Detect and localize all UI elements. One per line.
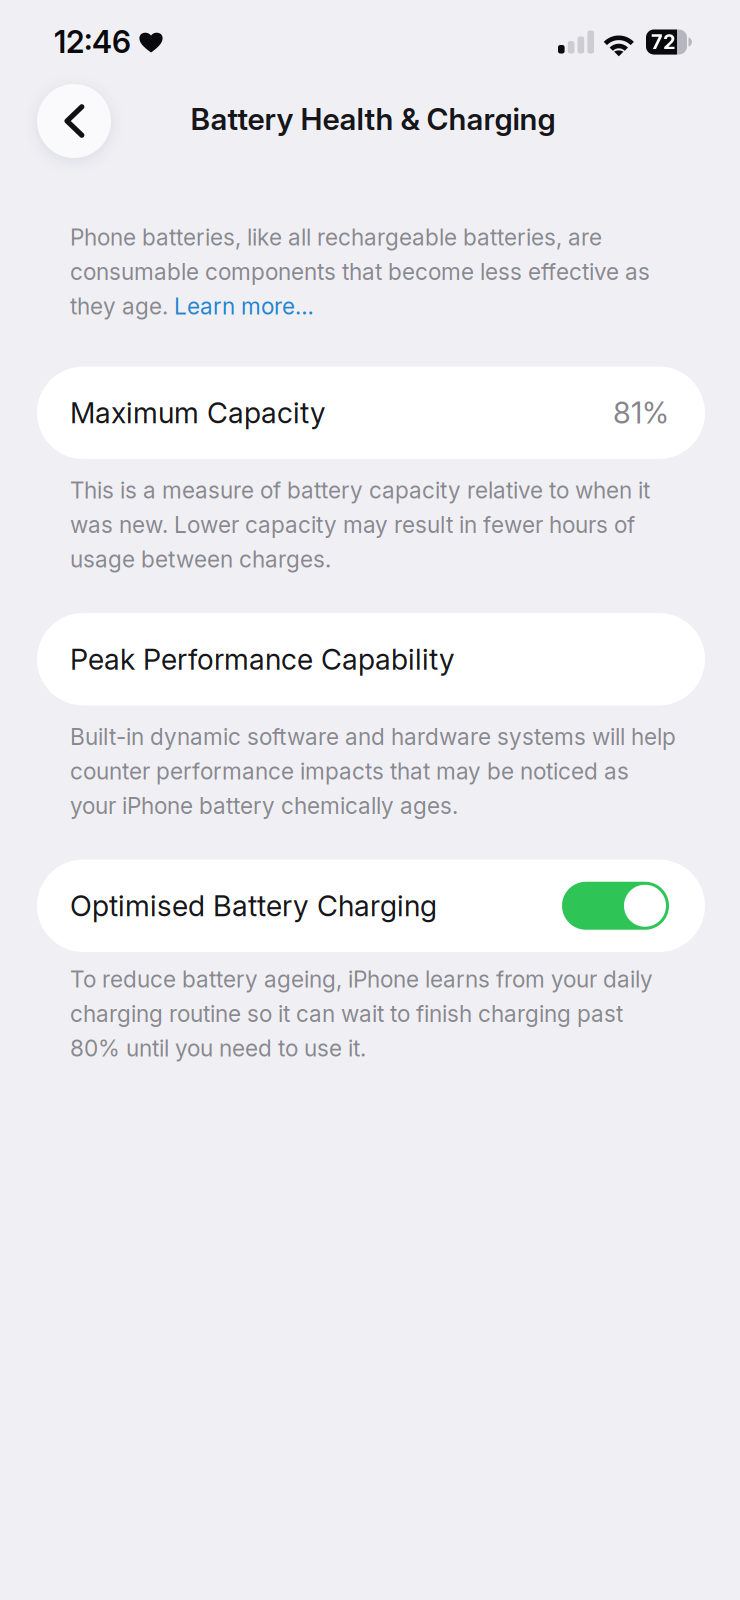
staticText: Learn more… bbox=[174, 292, 314, 320]
staticText: 72 bbox=[651, 30, 676, 54]
button[interactable]: Learn more… bbox=[174, 292, 314, 320]
staticText: Optimised Battery Charging bbox=[70, 888, 437, 923]
staticText: consumable components that become less e… bbox=[70, 258, 650, 285]
staticText: 80% until you need to use it. bbox=[70, 1034, 366, 1062]
button[interactable]: Peak Performance Capability bbox=[37, 613, 705, 705]
staticText: they age. bbox=[70, 292, 174, 320]
staticText: To reduce battery ageing, iPhone learns … bbox=[70, 965, 653, 993]
staticText: Phone batteries, like all rechargeable b… bbox=[70, 223, 602, 251]
staticText: Built-in dynamic software and hardware s… bbox=[70, 723, 676, 750]
staticText: 81% bbox=[613, 395, 669, 430]
staticText: This is a measure of battery capacity re… bbox=[70, 476, 650, 504]
staticText: Battery Health & Charging bbox=[190, 101, 555, 137]
button[interactable]: Optimised Battery Charging bbox=[37, 859, 705, 952]
staticText: Peak Performance Capability bbox=[70, 642, 455, 677]
staticText: Maximum Capacity bbox=[70, 395, 326, 430]
staticText: your iPhone battery chemically ages. bbox=[70, 792, 458, 819]
staticText: 12:46 bbox=[54, 24, 131, 60]
staticText: usage between charges. bbox=[70, 545, 331, 573]
staticText: was new. Lower capacity may result in fe… bbox=[70, 511, 635, 538]
staticText: counter performance impacts that may be … bbox=[70, 757, 629, 785]
button[interactable]: Back bbox=[37, 84, 111, 158]
button[interactable]: Maximum Capacity bbox=[37, 366, 705, 459]
staticText: charging routine so it can wait to finis… bbox=[70, 1000, 623, 1027]
